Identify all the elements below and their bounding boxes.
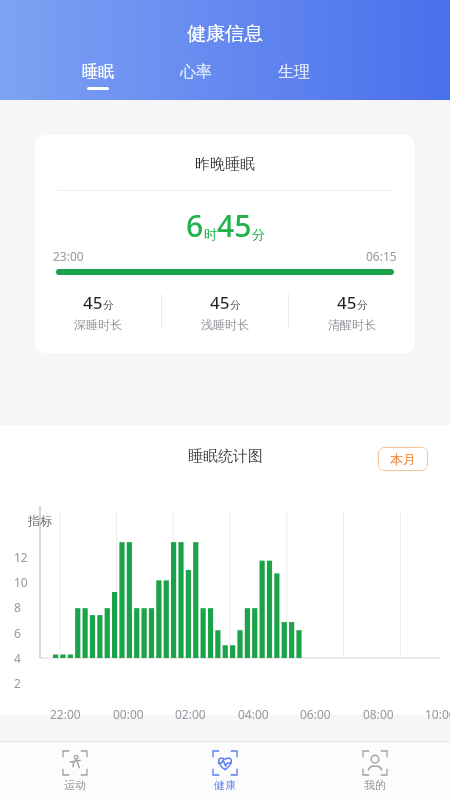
staticText: 睡眠: [82, 62, 114, 82]
staticText: 45: [217, 205, 252, 246]
staticText: 22:00: [50, 706, 81, 722]
staticText: 4: [14, 650, 21, 666]
button[interactable]: 我的: [300, 742, 450, 800]
staticText: 深睡时长: [74, 317, 122, 332]
staticText: 我的: [364, 778, 386, 792]
staticText: 浅睡时长: [201, 317, 249, 332]
staticText: 06:00: [300, 706, 331, 722]
staticText: 04:00: [238, 706, 269, 722]
staticText: 6: [14, 625, 21, 641]
staticText: 06:15: [366, 248, 397, 264]
button[interactable]: 45: [289, 287, 415, 335]
staticText: 8: [14, 599, 21, 615]
staticText: 生理: [278, 62, 310, 82]
staticText: 分: [103, 298, 114, 312]
staticText: 运动: [64, 778, 86, 792]
staticText: 45: [83, 291, 103, 314]
button[interactable]: 睡眠: [78, 62, 118, 90]
staticText: 本月: [390, 451, 416, 467]
staticText: 00:00: [113, 706, 144, 722]
staticText: 健康: [214, 778, 236, 792]
staticText: 清醒时长: [328, 317, 376, 332]
staticText: 23:00: [53, 248, 84, 264]
staticText: 02:00: [175, 706, 206, 722]
staticText: 2: [14, 675, 21, 691]
button[interactable]: 生理: [274, 62, 314, 90]
staticText: 6: [186, 205, 204, 246]
staticText: 08:00: [363, 706, 394, 722]
staticText: 时: [204, 226, 217, 242]
staticText: 45: [337, 291, 357, 314]
staticText: 10:00: [425, 706, 450, 722]
button[interactable]: 45: [162, 287, 288, 335]
staticText: 指标: [28, 513, 52, 528]
button[interactable]: 45: [35, 287, 161, 335]
staticText: 睡眠统计图: [188, 447, 263, 466]
staticText: 昨晚睡眠: [195, 155, 255, 174]
staticText: 分: [230, 298, 241, 312]
button[interactable]: 昨晚睡眠: [35, 135, 415, 353]
staticText: 12: [14, 549, 28, 565]
button[interactable]: 健康: [150, 742, 300, 800]
button[interactable]: 运动: [0, 742, 150, 800]
staticText: 健康信息: [187, 22, 263, 46]
button[interactable]: 心率: [176, 62, 216, 90]
staticText: 分: [252, 226, 265, 242]
staticText: 45: [210, 291, 230, 314]
staticText: 10: [14, 574, 28, 590]
staticText: 心率: [180, 62, 212, 82]
button[interactable]: 本月: [378, 447, 428, 471]
staticText: 分: [357, 298, 368, 312]
